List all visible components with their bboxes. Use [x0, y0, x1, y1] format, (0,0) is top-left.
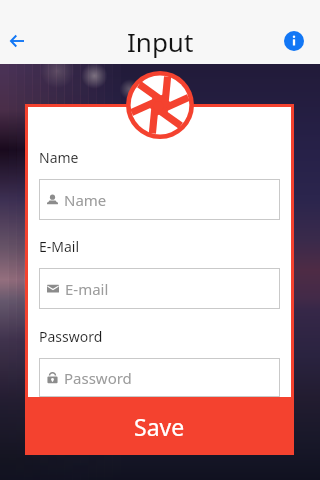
staticText: E-Mail: [39, 237, 80, 256]
staticText: Input: [127, 24, 194, 59]
button[interactable]: Save: [25, 399, 294, 455]
button[interactable]: E-mail: [39, 268, 280, 309]
staticText: Password: [39, 327, 103, 346]
staticText: Name: [64, 190, 107, 210]
button[interactable]: Name: [39, 179, 280, 220]
staticText: Password: [64, 368, 132, 388]
button[interactable]: Info: [279, 26, 309, 56]
button[interactable]: Password: [39, 358, 280, 397]
button[interactable]: Back: [0, 18, 34, 64]
staticText: Save: [134, 411, 185, 442]
staticText: E-mail: [65, 279, 109, 299]
staticText: Name: [39, 148, 79, 167]
